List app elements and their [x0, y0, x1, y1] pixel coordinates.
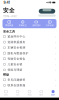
staticText: 守护每一次出行	[3, 15, 17, 18]
button[interactable]: 远程控制	[29, 19, 43, 28]
staticText: 道路救援服务	[8, 40, 26, 44]
staticText: 服务	[39, 94, 43, 96]
button[interactable]: 车辆安全检测	[0, 45, 59, 50]
staticText: 远程控制	[32, 24, 40, 27]
staticText: 隐私与数据保护	[8, 51, 29, 55]
button[interactable]: 驾驶安全报告	[0, 56, 59, 61]
button[interactable]: 首页	[0, 89, 12, 98]
staticText: ›	[55, 35, 56, 38]
staticText: ›	[55, 46, 56, 50]
button[interactable]: 紧急呼叫中心	[0, 34, 59, 39]
staticText: 商城	[27, 94, 31, 96]
staticText: 安全工具	[3, 30, 15, 34]
button[interactable]: 我的	[47, 89, 59, 98]
staticText: ›	[55, 57, 56, 61]
button[interactable]: 常见问题解答	[0, 77, 59, 82]
staticText: ›	[55, 68, 56, 72]
staticText: 行车记录	[46, 24, 54, 27]
staticText: 9:41	[3, 0, 9, 4]
button[interactable]: 服务	[35, 89, 47, 98]
button[interactable]: 商城	[24, 89, 35, 98]
staticText: 保险与理赔	[8, 68, 23, 72]
staticText: 我的	[51, 94, 55, 96]
staticText: 车辆安全检测	[8, 46, 26, 49]
button[interactable]: 紧急救援	[2, 19, 16, 28]
staticText: ›	[55, 83, 56, 87]
staticText: ›	[55, 78, 56, 82]
staticText: 联系在线客服	[8, 84, 26, 87]
staticText: ›	[55, 62, 56, 66]
button[interactable]: 车辆定位	[16, 19, 29, 28]
staticText: 常见问题解答	[8, 78, 26, 82]
staticText: 儿童安全锁	[8, 63, 23, 66]
staticText: ›	[55, 40, 56, 44]
button[interactable]: 道路救援服务	[0, 39, 59, 45]
staticText: 紧急救援	[5, 24, 13, 27]
staticText: ›	[55, 51, 56, 55]
staticText: 帮助	[3, 73, 9, 77]
staticText: 紧急呼叫中心	[8, 35, 26, 38]
staticText: 驾驶安全报告	[8, 57, 26, 60]
button[interactable]: 联系在线客服	[0, 83, 59, 88]
button[interactable]: 隐私与数据保护	[0, 50, 59, 56]
staticText: 社区	[16, 94, 20, 96]
button[interactable]: 儿童安全锁	[0, 61, 59, 67]
button[interactable]: 保险与理赔	[0, 67, 59, 73]
button[interactable]: 行车记录	[43, 19, 56, 28]
staticText: 安全	[3, 7, 15, 14]
button[interactable]: 社区	[12, 89, 24, 98]
staticText: 车辆定位	[19, 24, 27, 27]
